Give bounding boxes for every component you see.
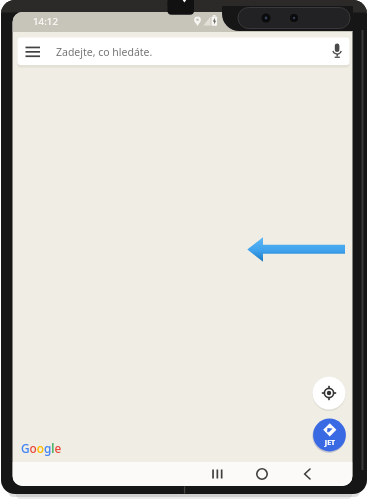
button[interactable] [313,419,346,452]
staticText: 14:12 [33,15,59,28]
button[interactable] [250,463,274,485]
button[interactable] [18,38,350,66]
button[interactable] [313,377,345,409]
staticText: JET [321,438,339,448]
button[interactable] [205,463,229,485]
button[interactable]: Google [21,440,62,456]
button[interactable] [327,41,347,62]
button[interactable] [20,41,44,62]
staticText: Zadejte, co hledáte. [56,45,153,59]
button[interactable] [295,463,319,485]
